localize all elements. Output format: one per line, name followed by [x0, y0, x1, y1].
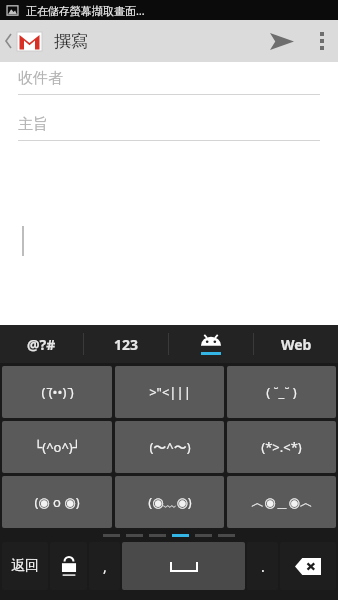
button[interactable]: . [247, 542, 278, 590]
button[interactable]: Up [0, 20, 46, 62]
staticText: , [103, 557, 107, 576]
button[interactable]: 收件者 [18, 62, 320, 94]
staticText: . [261, 557, 265, 576]
staticText: ︿◉＿◉︿ [251, 494, 313, 510]
button[interactable]: (◉ o ◉) [2, 476, 112, 528]
button[interactable]: >"<||| [115, 366, 224, 418]
staticText: @?# [27, 335, 56, 354]
button[interactable]: Send [258, 20, 306, 62]
staticText: (◉ o ◉) [34, 493, 80, 511]
button[interactable]: Lock [50, 542, 87, 590]
button[interactable]: Emoticons [169, 325, 253, 363]
button[interactable]: (◉﹏◉) [115, 476, 224, 528]
staticText: 123 [114, 335, 139, 354]
staticText: 收件者 [18, 69, 63, 88]
button[interactable]: 123 [84, 325, 168, 363]
staticText: ( ̄(••) ̄) [41, 383, 74, 401]
button[interactable]: ( ˘_˘ ) [227, 366, 336, 418]
button[interactable]: (*>.<*) [227, 421, 336, 473]
button[interactable]: Backspace [280, 542, 336, 590]
staticText: 主旨 [18, 115, 48, 134]
staticText: ( ˘_˘ ) [266, 383, 297, 401]
button[interactable]: 主旨 [18, 108, 320, 140]
staticText: (*>.<*) [261, 438, 302, 456]
staticText: 正在儲存螢幕擷取畫面… [26, 3, 145, 18]
button[interactable]: More options [306, 20, 338, 62]
staticText: (◉﹏◉) [148, 493, 192, 511]
button[interactable]: Web [254, 325, 338, 363]
staticText: 返回 [11, 557, 39, 575]
staticText: >"<||| [149, 383, 191, 401]
staticText: 撰寫 [54, 31, 88, 52]
staticText: └(^o^)┘ [34, 438, 81, 456]
button[interactable]: (〜^〜) [115, 421, 224, 473]
button[interactable]: , [89, 542, 120, 590]
button[interactable]: 返回 [2, 542, 48, 590]
staticText: Web [281, 335, 312, 354]
button[interactable]: ︿◉＿◉︿ [227, 476, 336, 528]
button[interactable]: Space [122, 542, 245, 590]
button[interactable]: @?# [0, 325, 83, 363]
button[interactable]: └(^o^)┘ [2, 421, 112, 473]
staticText: (〜^〜) [149, 438, 191, 456]
button[interactable]: ( ̄(••) ̄) [2, 366, 112, 418]
